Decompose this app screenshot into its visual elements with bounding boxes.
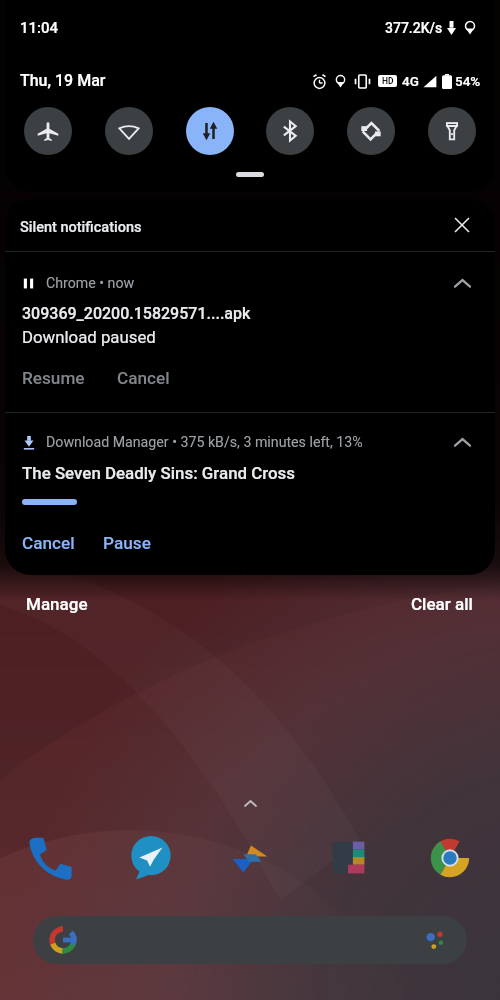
staticText: Manage: [26, 594, 88, 614]
button[interactable]: Chrome: [422, 830, 478, 886]
button[interactable]: Manage: [16, 586, 98, 622]
staticText: 377.2K/s: [385, 20, 443, 36]
button[interactable]: Airplane mode: [24, 107, 72, 155]
staticText: 309369_20200.15829571....apk: [22, 304, 251, 323]
button[interactable]: Phone: [22, 830, 78, 886]
button[interactable]: Chrome • now: [5, 252, 495, 412]
button[interactable]: Download Manager • 375 kB/s, 3 minutes l…: [5, 413, 495, 575]
staticText: Thu, 19 Mar: [20, 71, 106, 90]
staticText: The Seven Deadly Sins: Grand Cross: [22, 463, 296, 483]
staticText: HD: [382, 76, 394, 86]
staticText: Cancel: [22, 533, 75, 553]
button[interactable]: Resume: [22, 368, 85, 388]
button[interactable]: Cancel: [117, 368, 170, 388]
staticText: 11:04: [20, 19, 59, 37]
button[interactable]: Drive: [222, 830, 278, 886]
button[interactable]: Clear all: [401, 586, 483, 622]
button[interactable]: Search: [33, 916, 467, 964]
button[interactable]: Pause: [103, 533, 151, 553]
button[interactable]: Silent notifications: [5, 199, 495, 251]
button[interactable]: Telegram: [122, 830, 178, 886]
staticText: Download paused: [22, 327, 156, 347]
button[interactable]: Auto-rotate: [347, 107, 395, 155]
button[interactable]: Bluetooth: [266, 107, 314, 155]
button[interactable]: Wi-Fi: [105, 107, 153, 155]
staticText: 54%: [455, 73, 481, 89]
staticText: Clear all: [411, 594, 473, 614]
staticText: Resume: [22, 368, 85, 388]
staticText: Download Manager • 375 kB/s, 3 minutes l…: [46, 434, 363, 451]
button[interactable]: Cancel: [22, 533, 75, 553]
button[interactable]: Dismiss silent notifications: [451, 214, 473, 236]
staticText: Chrome • now: [46, 275, 135, 292]
staticText: Pause: [103, 533, 151, 553]
staticText: 4G: [402, 73, 419, 89]
staticText: Cancel: [117, 368, 170, 388]
button[interactable]: Files: [322, 830, 378, 886]
button[interactable]: Flashlight: [428, 107, 476, 155]
staticText: Silent notifications: [20, 219, 142, 236]
button[interactable]: Mobile data: [186, 107, 234, 155]
